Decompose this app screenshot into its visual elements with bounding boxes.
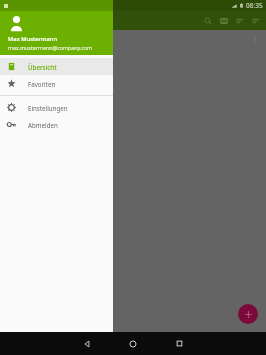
button[interactable]: Back [75, 332, 99, 355]
button[interactable]: Favoriten [0, 75, 113, 92]
button[interactable]: Abmelden [0, 116, 113, 133]
button[interactable]: Sort [232, 13, 248, 29]
button[interactable]: Einstellungen [0, 99, 113, 116]
button[interactable]: Home [121, 332, 145, 355]
button[interactable]: Filter [248, 13, 264, 29]
staticText: max.mustermann@company.com [8, 44, 93, 51]
button[interactable]: Recents [167, 332, 191, 355]
staticText: Übersicht [28, 63, 57, 71]
staticText: 08:35 [246, 1, 263, 10]
staticText: Max Mustermann [8, 35, 58, 43]
button[interactable]: Search [200, 13, 216, 29]
button[interactable]: Übersicht [0, 58, 113, 75]
button[interactable]: Grid view [216, 13, 232, 29]
button[interactable]: Add [238, 304, 258, 324]
staticText: Abmelden [28, 121, 58, 129]
staticText: Einstellungen [28, 104, 68, 112]
staticText: Favoriten [28, 80, 56, 88]
